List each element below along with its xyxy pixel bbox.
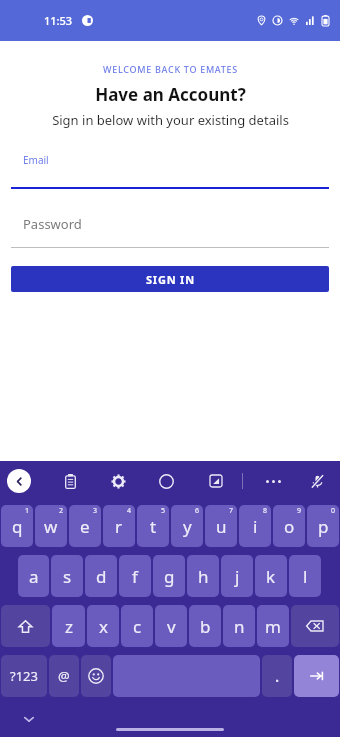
button[interactable]: k xyxy=(255,555,287,597)
button[interactable]: Backspace xyxy=(291,605,339,647)
button[interactable]: c xyxy=(121,605,153,647)
button[interactable]: d xyxy=(85,555,117,597)
staticText: j xyxy=(235,565,240,588)
button[interactable]: p xyxy=(307,505,339,547)
staticText: SIGN IN xyxy=(146,272,195,287)
button[interactable]: Theme xyxy=(153,468,179,494)
staticText: x xyxy=(99,615,108,638)
staticText: t xyxy=(150,515,157,538)
staticText: o xyxy=(284,515,295,538)
staticText: k xyxy=(266,565,276,588)
button[interactable]: Shift xyxy=(1,605,50,647)
button[interactable]: l xyxy=(289,555,321,597)
button[interactable]: Enter xyxy=(294,655,339,697)
staticText: Password xyxy=(23,215,82,233)
button[interactable]: m xyxy=(257,605,289,647)
button[interactable]: f xyxy=(119,555,151,597)
staticText: i xyxy=(253,515,258,538)
button[interactable]: s xyxy=(51,555,83,597)
staticText: 4 xyxy=(127,506,132,516)
button[interactable]: Voice input muted xyxy=(304,468,330,494)
button[interactable]: SIGN IN xyxy=(11,266,329,292)
button[interactable]: Emoji xyxy=(81,655,111,697)
button[interactable]: o xyxy=(273,505,305,547)
button[interactable]: a xyxy=(18,555,49,597)
staticText: a xyxy=(29,565,39,588)
button[interactable]: t xyxy=(137,505,169,547)
staticText: l xyxy=(303,565,308,588)
button[interactable]: j xyxy=(221,555,253,597)
button[interactable]: Settings xyxy=(105,468,131,494)
staticText: 0 xyxy=(331,506,336,516)
staticText: Sign in below with your existing details xyxy=(52,111,289,129)
button[interactable]: n xyxy=(223,605,255,647)
button[interactable]: q xyxy=(1,505,33,547)
button[interactable]: Hide keyboard xyxy=(22,712,36,726)
staticText: 7 xyxy=(229,506,234,516)
button[interactable]: . xyxy=(262,655,292,697)
staticText: 6 xyxy=(195,506,200,516)
button[interactable]: Clipboard xyxy=(57,468,83,494)
button[interactable]: w xyxy=(35,505,67,547)
staticText: 11:53 xyxy=(44,13,73,28)
button[interactable]: h xyxy=(187,555,219,597)
staticText: f xyxy=(132,565,138,588)
staticText: s xyxy=(63,565,72,588)
staticText: Email xyxy=(23,153,49,167)
button[interactable]: @ xyxy=(49,655,79,697)
button[interactable]: ?123 xyxy=(1,655,47,697)
staticText: w xyxy=(44,515,58,538)
staticText: @ xyxy=(58,667,70,685)
staticText: 2 xyxy=(59,506,64,516)
staticText: d xyxy=(96,565,107,588)
button[interactable]: i xyxy=(239,505,271,547)
button[interactable]: u xyxy=(205,505,237,547)
button[interactable]: Stickers xyxy=(203,468,229,494)
staticText: ?123 xyxy=(10,667,38,685)
button[interactable]: Back xyxy=(7,469,31,493)
staticText: v xyxy=(167,615,176,638)
staticText: u xyxy=(216,515,227,538)
staticText: 9 xyxy=(297,506,302,516)
staticText: n xyxy=(234,615,245,638)
staticText: z xyxy=(65,615,73,638)
button[interactable]: r xyxy=(103,505,135,547)
staticText: Have an Account? xyxy=(95,83,246,106)
staticText: 5 xyxy=(161,506,166,516)
button[interactable]: e xyxy=(69,505,101,547)
staticText: r xyxy=(115,515,123,538)
staticText: g xyxy=(164,565,175,588)
button[interactable]: v xyxy=(155,605,187,647)
button[interactable]: g xyxy=(153,555,185,597)
button[interactable]: Password xyxy=(0,215,340,248)
button[interactable]: x xyxy=(87,605,119,647)
button[interactable]: b xyxy=(189,605,221,647)
staticText: b xyxy=(200,615,211,638)
staticText: p xyxy=(318,515,329,538)
staticText: . xyxy=(275,665,280,687)
button[interactable]: More options xyxy=(258,466,288,496)
button[interactable]: Email xyxy=(0,151,340,189)
staticText: q xyxy=(12,515,23,538)
button[interactable]: y xyxy=(171,505,203,547)
staticText: y xyxy=(183,515,192,538)
staticText: h xyxy=(198,565,209,588)
staticText: WELCOME BACK TO EMATES xyxy=(103,63,238,75)
button[interactable]: z xyxy=(52,605,85,647)
staticText: 1 xyxy=(25,506,30,516)
staticText: 8 xyxy=(263,506,268,516)
staticText: e xyxy=(80,515,90,538)
staticText: m xyxy=(265,615,281,638)
staticText: 3 xyxy=(93,506,98,516)
staticText: c xyxy=(133,615,142,638)
